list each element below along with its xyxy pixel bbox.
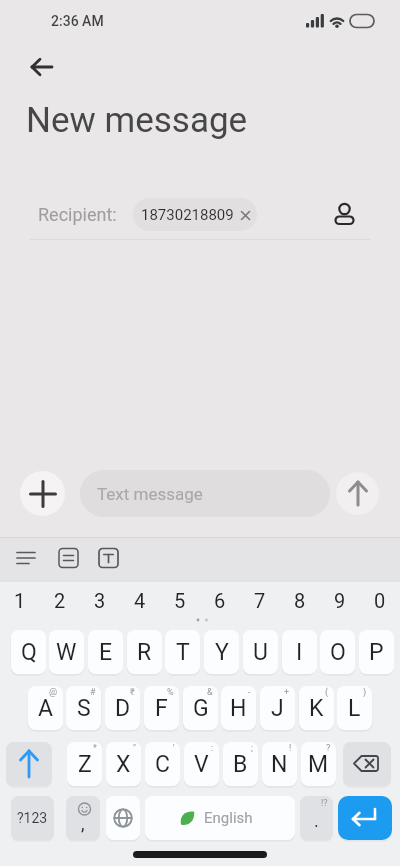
button[interactable]: O [320, 630, 355, 674]
staticText: M [308, 751, 329, 778]
button[interactable] [338, 796, 392, 840]
staticText: O [330, 639, 346, 666]
staticText: J [271, 695, 284, 722]
staticText: ; [251, 743, 253, 754]
button[interactable]: U [243, 630, 278, 674]
button[interactable]: V [184, 742, 219, 786]
staticText: 2 [54, 589, 66, 612]
staticText: K [309, 695, 324, 722]
staticText: 7 [254, 589, 266, 612]
button[interactable]: R [127, 630, 162, 674]
button[interactable]: 6 [200, 584, 240, 616]
staticText: 0 [374, 589, 386, 612]
staticText: L [348, 695, 361, 722]
button[interactable]: English [145, 796, 295, 840]
staticText: ( [325, 687, 329, 698]
staticText: F [155, 695, 168, 722]
staticText: Text message [97, 484, 203, 504]
staticText: 8 [294, 589, 306, 612]
button[interactable]: N [262, 742, 297, 786]
button[interactable]: P [359, 630, 394, 674]
staticText: G [193, 695, 209, 722]
button[interactable]: 9 [320, 584, 360, 616]
button[interactable]: 8 [280, 584, 320, 616]
staticText: X [116, 751, 131, 778]
button[interactable] [106, 796, 140, 840]
button[interactable]: 0 [360, 584, 400, 616]
staticText: : [211, 743, 214, 754]
staticText: & [207, 687, 213, 698]
staticText: , [81, 813, 85, 834]
button[interactable]: M [301, 742, 336, 786]
button[interactable]: Q [11, 630, 46, 674]
button[interactable] [343, 742, 391, 786]
button[interactable]: 5 [160, 584, 200, 616]
button[interactable]: A [28, 686, 63, 730]
staticText: R [137, 639, 152, 666]
staticText: ₹ [130, 687, 135, 698]
staticText: P [369, 639, 384, 666]
staticText: N [271, 751, 288, 778]
button[interactable]: D [105, 686, 140, 730]
staticText: English [204, 809, 253, 827]
staticText: 6 [214, 589, 226, 612]
button[interactable]: E [88, 630, 123, 674]
button[interactable]: 2 [40, 584, 80, 616]
button[interactable]: Text message [80, 470, 330, 517]
button[interactable]: J [260, 686, 295, 730]
staticText: B [233, 751, 248, 778]
button[interactable]: . [300, 796, 333, 840]
button[interactable]: F [144, 686, 179, 730]
button[interactable]: T [165, 630, 200, 674]
staticText: 9 [334, 589, 346, 612]
button[interactable]: G [183, 686, 218, 730]
button[interactable]: B [223, 742, 258, 786]
button[interactable]: H [221, 686, 256, 730]
staticText: " [133, 743, 136, 754]
staticText: ?123 [17, 810, 48, 826]
staticText: 1 [14, 589, 26, 612]
button[interactable]: L [337, 686, 372, 730]
staticText: ? [326, 743, 331, 754]
staticText: H [230, 695, 247, 722]
staticText: . [314, 810, 319, 831]
button[interactable]: Y [204, 630, 239, 674]
staticText: D [115, 695, 131, 722]
button[interactable]: K [299, 686, 334, 730]
staticText: 2:36 AM [51, 13, 104, 29]
staticText: Y [215, 639, 229, 666]
staticText: + [284, 687, 290, 698]
button[interactable]: S [66, 686, 101, 730]
button[interactable]: 1 [0, 584, 40, 616]
staticText: T [176, 639, 190, 666]
button[interactable]: 3 [80, 584, 120, 616]
staticText: 3 [94, 589, 106, 612]
staticText: Recipient: [38, 204, 117, 225]
staticText: E [99, 639, 113, 666]
button[interactable] [20, 52, 62, 82]
staticText: S [77, 695, 91, 722]
button[interactable]: W [49, 630, 84, 674]
button[interactable]: 4 [120, 584, 160, 616]
staticText: New message [26, 100, 248, 141]
button[interactable]: ?123 [11, 796, 54, 840]
button[interactable]: 18730218809 [133, 198, 257, 231]
staticText: ) [363, 687, 367, 698]
staticText: 4 [134, 589, 146, 612]
button[interactable] [330, 196, 359, 228]
button[interactable] [6, 742, 52, 786]
button[interactable]: 7 [240, 584, 280, 616]
staticText: Z [78, 751, 92, 778]
staticText: @ [49, 687, 58, 698]
button[interactable]: Z [67, 742, 102, 786]
button[interactable] [336, 472, 379, 515]
button[interactable]: X [106, 742, 141, 786]
staticText: ' [173, 743, 175, 754]
staticText: 18730218809 [141, 206, 234, 224]
button[interactable]: C [145, 742, 180, 786]
button[interactable]: , [66, 796, 100, 840]
button[interactable]: I [282, 630, 317, 674]
button[interactable] [20, 471, 65, 516]
staticText: ! [289, 743, 292, 754]
staticText: !? [321, 798, 328, 809]
